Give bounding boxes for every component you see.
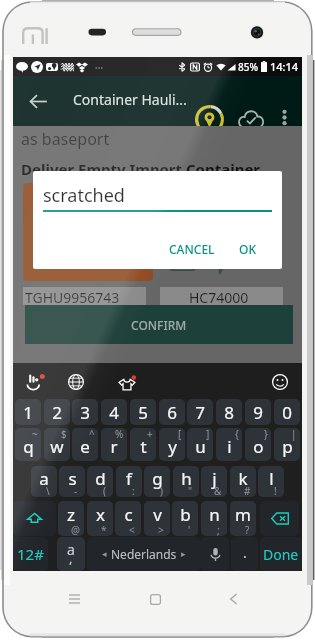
staticText: - [74,484,78,497]
staticText: k [238,467,248,490]
button[interactable]: h [173,466,199,497]
staticText: n [209,503,220,526]
staticText: ; [217,523,220,536]
button[interactable]: Shift [13,501,56,536]
button[interactable]: OK [233,235,262,263]
button[interactable]: Add photo [169,248,195,274]
staticText: # [244,484,251,497]
staticText: 8 [224,401,234,424]
button[interactable]: Back [23,86,53,116]
button[interactable]: c [115,501,141,536]
staticText: $ [61,428,67,441]
staticText: l [269,467,274,490]
button[interactable]: v [144,501,170,536]
button[interactable]: s [59,466,85,497]
button[interactable]: z [58,501,84,536]
button[interactable]: Handwriting input [26,372,46,392]
button[interactable]: 3 [72,399,98,425]
button[interactable]: 8 [216,399,242,425]
staticText: * [101,523,107,536]
button[interactable]: Location tracking [193,103,225,135]
staticText: , [69,549,73,567]
button[interactable]: i [216,428,242,461]
button[interactable]: Backspace [260,501,299,536]
staticText: h [181,467,192,490]
staticText: y [168,435,177,458]
button[interactable]: 4 [101,399,127,425]
button[interactable]: d [87,466,113,497]
button[interactable]: Sync status [236,104,266,134]
button[interactable]: a [31,466,57,497]
staticText: b [180,503,191,526]
button[interactable]: More options [271,104,297,130]
button[interactable]: Space [87,537,201,571]
button[interactable]: k [230,466,256,497]
staticText: 12# [17,544,44,564]
button[interactable]: CONFIRM [25,305,293,344]
button[interactable]: m [230,501,256,536]
button[interactable]: Recent apps [69,594,80,604]
button[interactable]: f [116,466,142,497]
button[interactable]: j [201,466,227,497]
staticText: m [235,503,251,526]
button[interactable]: g [144,466,170,497]
staticText: 85% [238,60,258,74]
button[interactable]: Done [260,537,302,571]
staticText: d [95,467,106,490]
staticText: [ [178,428,182,441]
button[interactable]: p [274,428,300,461]
button[interactable]: y [159,428,185,461]
staticText: Deliver Empty Import Container [21,159,261,179]
button[interactable]: q [15,428,41,461]
button[interactable]: Comments [213,248,243,278]
button[interactable]: 6 [159,399,185,425]
button[interactable]: 5 [130,399,156,425]
button[interactable]: e [72,428,98,461]
staticText: " [188,484,193,497]
staticText: & [214,484,222,497]
staticText: scratched [43,183,125,208]
button[interactable]: IMPORT [23,183,153,281]
button[interactable]: 2 [44,399,70,425]
staticText: + [147,428,153,441]
staticText: u [195,435,206,458]
button[interactable]: Home [150,594,161,605]
button[interactable]: u [187,428,213,461]
staticText: 14:14 [270,59,299,74]
staticText: 4 [109,401,119,424]
button[interactable]: Voice input [201,537,229,571]
button[interactable]: 1 [15,399,41,425]
staticText: @ [71,523,80,536]
button[interactable]: Change language [67,373,85,391]
button[interactable]: Themes [117,373,137,393]
staticText: 5 [138,401,148,424]
staticText: \ [46,484,50,497]
button[interactable]: x [87,501,113,536]
button[interactable]: Back [229,593,238,605]
button[interactable]: 0 [274,399,300,425]
button[interactable]: . [231,537,258,571]
staticText: z [67,503,75,526]
button[interactable]: n [201,501,227,536]
staticText: q [23,435,34,458]
staticText: c [124,503,133,526]
button[interactable]: 9 [245,399,271,425]
staticText: s [68,467,77,490]
button[interactable]: o [245,428,271,461]
staticText: 0 [282,401,292,424]
staticText: ▸ [181,549,186,559]
staticText: | [291,428,297,441]
button[interactable]: Emoji [271,373,289,391]
button[interactable]: 12# [13,537,48,571]
staticText: a [67,540,75,559]
staticText: > [158,523,164,536]
staticText: as baseport [21,128,110,150]
button[interactable]: CANCEL [163,235,221,263]
button[interactable]: b [172,501,198,536]
button[interactable]: 7 [187,399,213,425]
button[interactable]: r [101,428,127,461]
button[interactable]: a [57,537,85,571]
button[interactable]: l [258,466,284,497]
button[interactable]: w [44,428,70,461]
button[interactable]: t [130,428,156,461]
